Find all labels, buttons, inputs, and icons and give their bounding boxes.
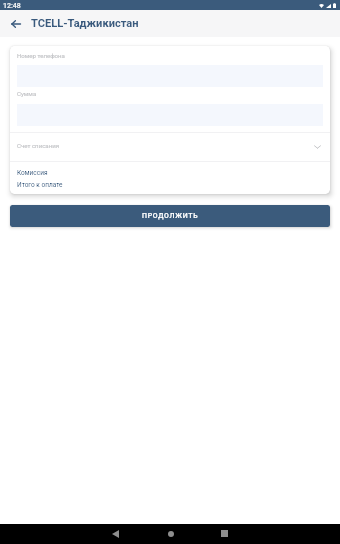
staticText: ПРОДОЛЖИТЬ: [142, 212, 199, 220]
staticText: Номер телефона: [17, 52, 65, 59]
button[interactable]: Home: [158, 527, 183, 540]
staticText: Комиссия: [17, 169, 48, 177]
button[interactable]: Back: [4, 12, 28, 36]
staticText: Итого к оплате: [17, 181, 63, 189]
button[interactable]: ПРОДОЛЖИТЬ: [10, 205, 330, 227]
button[interactable]: Back: [103, 527, 128, 540]
staticText: Счет списания: [17, 142, 60, 149]
staticText: 12:48: [3, 2, 21, 10]
button[interactable]: Recents: [212, 527, 237, 540]
staticText: Сумма: [17, 90, 37, 97]
staticText: TCELL-Таджикистан: [31, 17, 139, 30]
button[interactable]: Счет списания: [10, 131, 330, 160]
